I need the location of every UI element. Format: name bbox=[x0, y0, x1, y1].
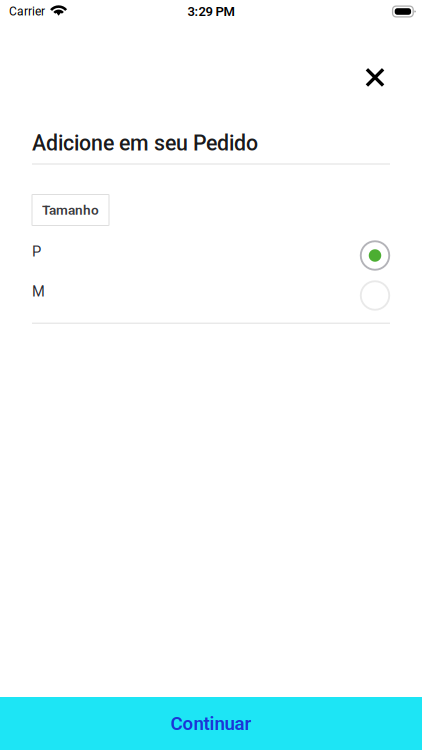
button[interactable]: P bbox=[0, 235, 422, 275]
button[interactable]: M bbox=[0, 275, 422, 315]
staticText: P bbox=[32, 243, 41, 260]
button[interactable]: Continuar bbox=[0, 697, 422, 750]
staticText: 3:29 PM bbox=[187, 4, 234, 19]
button[interactable]: Close bbox=[353, 55, 397, 99]
staticText: Adicione em seu Pedido bbox=[32, 131, 258, 156]
staticText: Continuar bbox=[170, 713, 251, 734]
staticText: M bbox=[32, 283, 45, 300]
staticText: Carrier bbox=[9, 4, 45, 19]
staticText: Tamanho bbox=[42, 202, 99, 218]
